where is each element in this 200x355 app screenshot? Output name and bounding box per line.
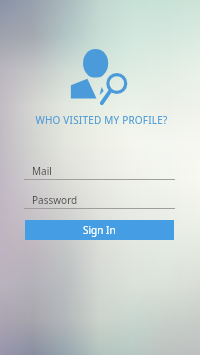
staticText: Password [32,193,78,207]
other: Profile visitors logo [69,46,129,106]
button[interactable]: Password [24,190,175,209]
staticText: Sign In [83,223,116,237]
staticText: Mail [32,164,52,178]
button[interactable]: Sign In [25,220,174,240]
button[interactable]: Mail [24,161,175,180]
staticText: WHO VISITED MY PROFILE? [35,113,168,127]
